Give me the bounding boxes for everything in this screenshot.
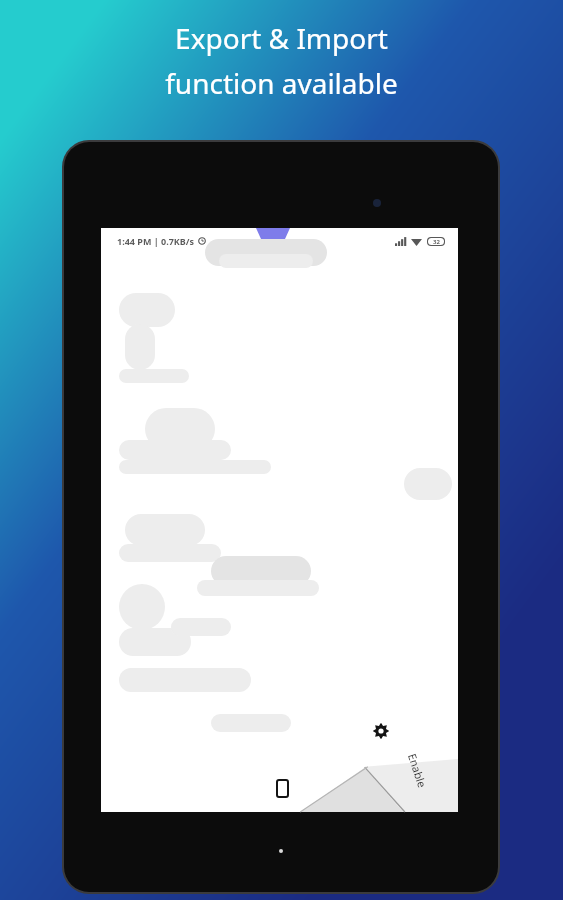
staticText: Export & Import xyxy=(175,19,388,57)
staticText: function available xyxy=(165,64,398,102)
staticText: Enable xyxy=(405,751,430,789)
staticText: 32 xyxy=(433,238,440,245)
button[interactable]: Device xyxy=(268,774,296,802)
button[interactable]: Settings xyxy=(365,715,397,747)
staticText: 1:44 PM | 0.7KB/s xyxy=(117,235,195,247)
button[interactable]: Enable xyxy=(297,758,458,812)
